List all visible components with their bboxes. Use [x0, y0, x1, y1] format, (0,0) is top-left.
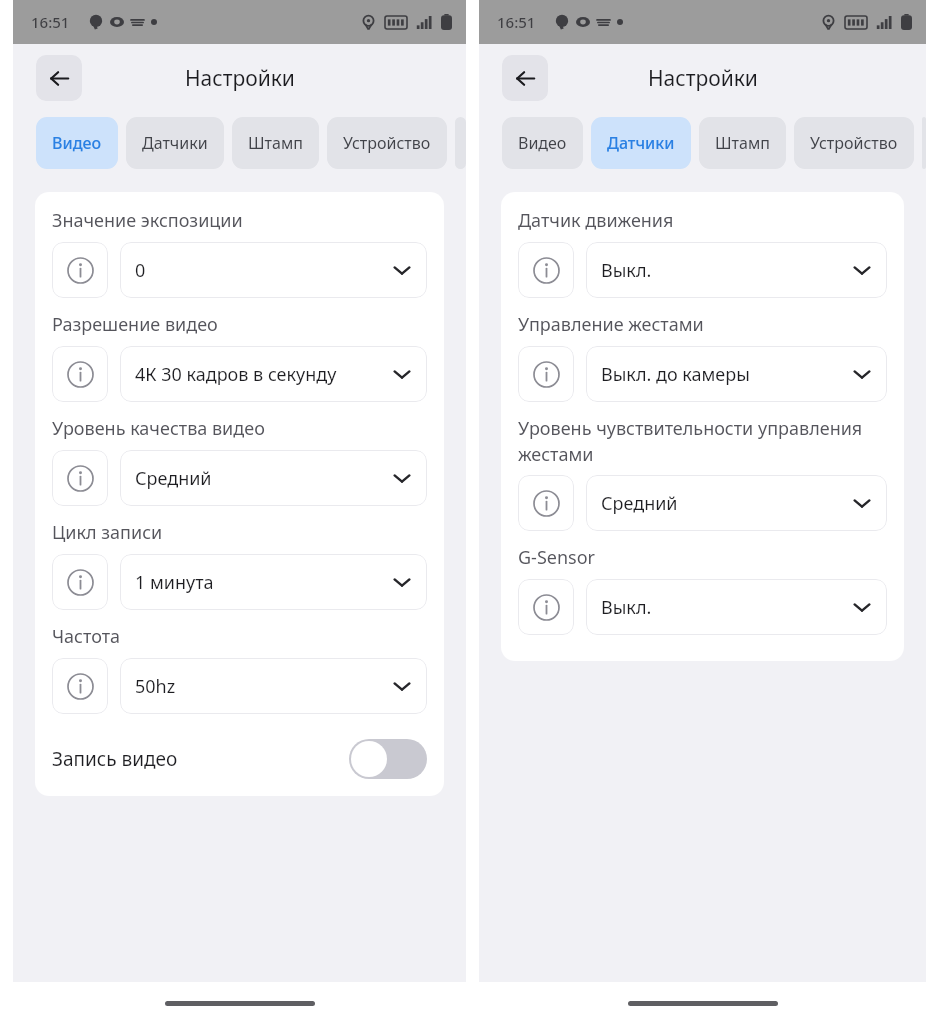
staticText: Видео — [518, 132, 567, 154]
staticText: Устройство — [343, 132, 431, 154]
staticText: Управление жестами — [518, 312, 704, 337]
staticText: 1 минута — [135, 570, 214, 595]
button[interactable]: Выкл. — [586, 242, 887, 298]
button[interactable]: Info — [52, 242, 108, 298]
staticText: Частота — [52, 624, 121, 649]
button[interactable]: Info — [52, 554, 108, 610]
staticText: Видео — [52, 132, 102, 154]
button[interactable]: Датчики — [126, 117, 224, 169]
button[interactable]: 0 — [120, 242, 427, 298]
button[interactable]: Info — [518, 579, 574, 635]
staticText: 4К 30 кадров в секунду — [135, 362, 337, 387]
button[interactable]: Info — [52, 346, 108, 402]
staticText: 16:51 — [31, 12, 70, 32]
button[interactable]: Выкл. до камеры — [586, 346, 887, 402]
staticText: Настройки — [185, 64, 295, 93]
staticText: Выкл. до камеры — [601, 362, 750, 387]
button[interactable]: 1 минута — [120, 554, 427, 610]
staticText: 50hz — [135, 674, 176, 699]
staticText: Датчики — [142, 132, 208, 154]
button[interactable]: Устройство — [327, 117, 447, 169]
staticText: Выкл. — [601, 595, 652, 620]
button[interactable]: Датчики — [591, 117, 691, 169]
button[interactable]: Info — [52, 658, 108, 714]
staticText: Датчики — [607, 132, 675, 154]
staticText: Уровень чувствительности управления жест… — [518, 416, 887, 466]
button[interactable]: Info — [518, 346, 574, 402]
button[interactable]: Штамп — [232, 117, 319, 169]
staticText: Уровень качества видео — [52, 416, 265, 441]
button[interactable]: Back — [502, 55, 548, 101]
button[interactable]: Штамп — [699, 117, 786, 169]
staticText: Цикл записи — [52, 520, 163, 545]
button[interactable]: Средний — [120, 450, 427, 506]
button[interactable]: Видео — [502, 117, 583, 169]
staticText: Выкл. — [601, 258, 652, 283]
staticText: 16:51 — [497, 12, 536, 32]
button[interactable]: Запись видео — [52, 728, 427, 790]
button[interactable]: 4К 30 кадров в секунду — [120, 346, 427, 402]
staticText: Устройство — [810, 132, 898, 154]
button[interactable]: Info — [518, 242, 574, 298]
staticText: 0 — [135, 258, 146, 283]
staticText: Средний — [601, 491, 678, 516]
staticText: G-Sensor — [518, 545, 596, 570]
staticText: Значение экспозиции — [52, 208, 243, 233]
button[interactable]: Info — [518, 475, 574, 531]
button[interactable]: Info — [52, 450, 108, 506]
staticText: Запись видео — [52, 746, 178, 772]
staticText: Разрешение видео — [52, 312, 218, 337]
button[interactable]: Устройство — [794, 117, 914, 169]
button[interactable]: Back — [36, 55, 82, 101]
button[interactable]: Выкл. — [586, 579, 887, 635]
staticText: Средний — [135, 466, 212, 491]
button[interactable]: 50hz — [120, 658, 427, 714]
button[interactable]: Средний — [586, 475, 887, 531]
button[interactable]: Видео — [36, 117, 118, 169]
staticText: Настройки — [648, 64, 758, 93]
staticText: Штамп — [248, 132, 303, 154]
staticText: Штамп — [715, 132, 770, 154]
staticText: Датчик движения — [518, 208, 674, 233]
